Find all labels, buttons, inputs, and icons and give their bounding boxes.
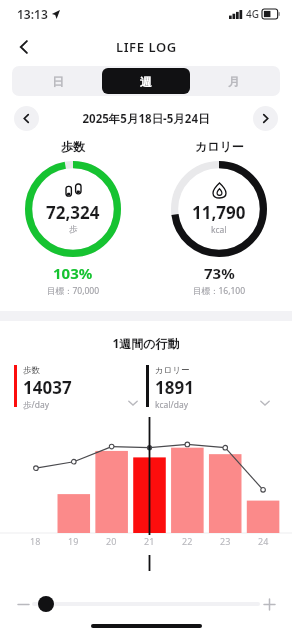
button[interactable]: Previous week: [14, 106, 39, 131]
staticText: 日: [52, 74, 64, 89]
staticText: 24: [258, 535, 269, 547]
staticText: カロリー: [155, 365, 190, 376]
staticText: 1891: [155, 376, 194, 399]
staticText: 4G: [246, 7, 259, 21]
button[interactable]: Next week: [253, 106, 278, 131]
button[interactable]: Zoom out: [14, 595, 32, 613]
staticText: 歩数: [23, 365, 40, 376]
staticText: 72,324: [46, 201, 100, 224]
staticText: 103%: [53, 263, 93, 283]
staticText: 73%: [204, 263, 235, 283]
staticText: 14037: [23, 376, 72, 399]
staticText: 1週間の行動: [0, 335, 292, 351]
staticText: 19: [68, 535, 79, 547]
staticText: 21: [144, 535, 155, 547]
staticText: kcal: [211, 224, 227, 236]
staticText: 月: [228, 74, 240, 89]
staticText: 22: [182, 535, 193, 547]
button[interactable]: Zoom in: [260, 595, 278, 613]
button[interactable]: 日: [14, 68, 102, 94]
staticText: 2025年5月18日-5月24日: [39, 111, 253, 127]
staticText: 18: [30, 535, 41, 547]
staticText: 目標：70,000: [47, 285, 100, 297]
button[interactable]: カロリー: [146, 365, 278, 411]
button[interactable]: 月: [190, 68, 278, 94]
staticText: 歩数: [61, 139, 85, 154]
button[interactable]: 歩数: [14, 365, 146, 411]
button[interactable]: Zoom level: [38, 596, 54, 612]
staticText: 週: [140, 74, 152, 89]
staticText: 歩/day: [23, 399, 49, 411]
button[interactable]: 週: [102, 68, 190, 94]
staticText: kcal/day: [155, 399, 189, 411]
staticText: 20: [106, 535, 117, 547]
staticText: 11,790: [192, 201, 246, 224]
staticText: 13:13: [17, 6, 48, 22]
staticText: カロリー: [195, 139, 244, 154]
staticText: 23: [220, 535, 231, 547]
button[interactable]: Back: [6, 29, 42, 65]
staticText: LIFE LOG: [116, 38, 177, 56]
staticText: 歩: [69, 224, 78, 235]
staticText: 目標：16,100: [193, 285, 246, 297]
